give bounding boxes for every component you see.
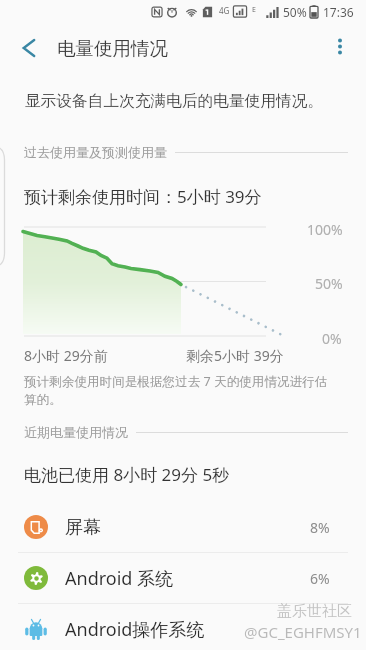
staticText: 100% (307, 220, 343, 239)
staticText: Android 系统 (65, 566, 174, 591)
staticText: 预计剩余使用时间：5小时 39分 (24, 185, 262, 208)
staticText: 50% (315, 274, 343, 293)
staticText: Android操作系统 (65, 617, 205, 642)
staticText: 过去使用量及预测使用量 (24, 144, 167, 160)
button[interactable]: Back (4, 24, 52, 72)
staticText: E (252, 5, 256, 15)
staticText: 屏幕 (65, 516, 101, 539)
staticText: 近期电量使用情况 (24, 424, 128, 440)
staticText: 电池已使用 8小时 29分 5秒 (24, 463, 230, 486)
staticText: 8% (310, 518, 330, 537)
button[interactable]: Android 系统 (0, 553, 366, 603)
staticText: 17:36 (323, 4, 354, 20)
staticText: 0% (322, 329, 342, 348)
button[interactable]: Android操作系统 (0, 604, 366, 650)
staticText: 4G (219, 5, 230, 16)
staticText: 剩余5小时 39分 (186, 346, 284, 365)
button[interactable]: More options (318, 24, 362, 68)
staticText: 预计剩余使用时间是根据您过去 7 天的使用情况进行估算的。 (24, 373, 337, 408)
staticText: 盖乐世社区 (277, 602, 352, 621)
staticText: 8小时 29分前 (24, 346, 108, 365)
staticText: @GC_EGHFMSY1 (244, 622, 362, 642)
button[interactable]: 屏幕 (0, 502, 366, 552)
staticText: 50% (283, 4, 307, 20)
staticText: 显示设备自上次充满电后的电量使用情况。 (25, 91, 324, 111)
staticText: 6% (310, 569, 330, 588)
staticText: 电量使用情况 (57, 37, 168, 60)
